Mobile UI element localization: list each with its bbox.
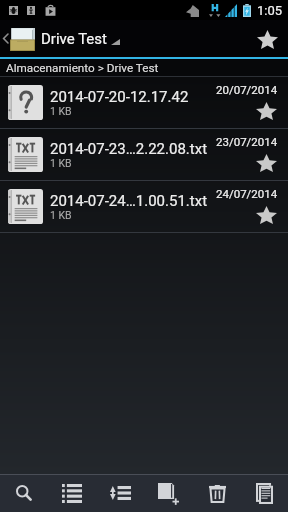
- button[interactable]: Sort: [96, 475, 144, 512]
- button[interactable]: 2014-07-24…1.00.51.txt: [0, 181, 288, 232]
- button[interactable]: Bookmark: [246, 20, 288, 57]
- button[interactable]: 2014-07-23…2.22.08.txt: [0, 129, 288, 180]
- button[interactable]: Almacenamiento > Drive Test: [0, 59, 288, 76]
- button[interactable]: List view: [48, 475, 96, 512]
- staticText: 1 KB: [50, 209, 72, 221]
- staticText: 24/07/2014: [216, 187, 278, 200]
- button[interactable]: Up: [0, 20, 35, 57]
- button[interactable]: New file: [144, 475, 192, 512]
- staticText: 23/07/2014: [216, 135, 278, 148]
- staticText: 1 KB: [50, 157, 72, 169]
- staticText: 2014-07-24…1.00.51.txt: [50, 192, 208, 210]
- staticText: Drive Test: [41, 30, 107, 48]
- staticText: 1:05: [257, 3, 283, 18]
- staticText: 1 KB: [50, 105, 72, 117]
- staticText: 2014-07-23…2.22.08.txt: [50, 140, 208, 158]
- button[interactable]: Search: [0, 475, 48, 512]
- staticText: 2014-07-20-12.17.42: [50, 88, 189, 106]
- button[interactable]: Delete: [192, 475, 240, 512]
- button[interactable]: Copy: [240, 475, 288, 512]
- button[interactable]: 2014-07-20-12.17.42: [0, 77, 288, 128]
- staticText: 20/07/2014: [216, 83, 278, 96]
- staticText: Almacenamiento > Drive Test: [6, 61, 159, 75]
